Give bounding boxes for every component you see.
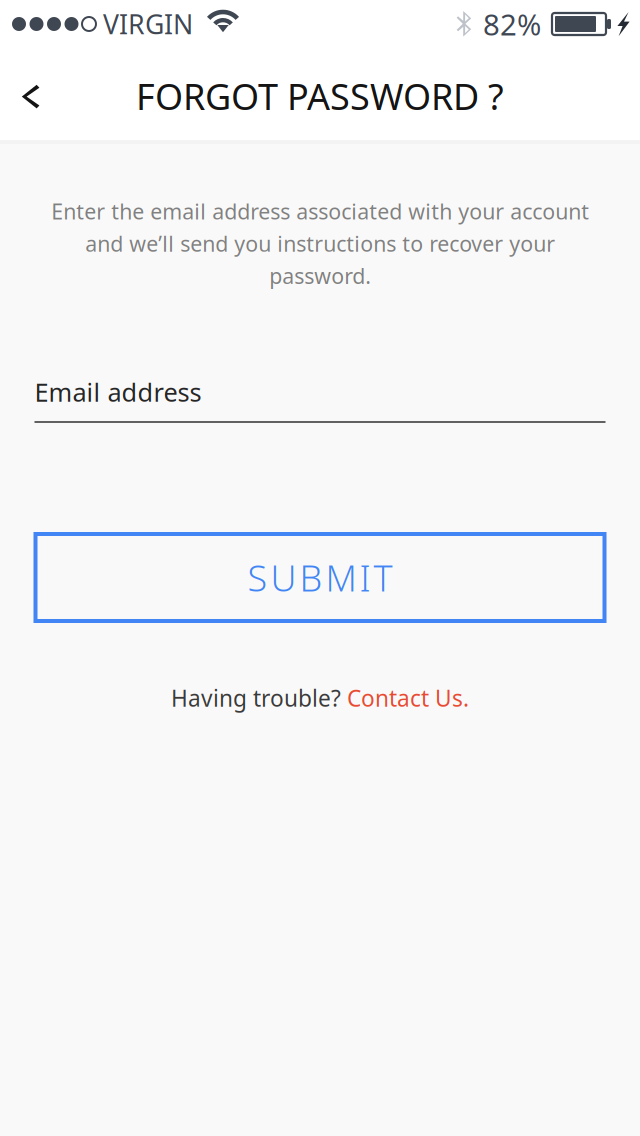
staticText: SUBMIT: [247, 554, 392, 601]
staticText: 82%: [483, 4, 541, 43]
staticText: Contact Us.: [347, 683, 469, 713]
staticText: Having trouble?: [171, 683, 347, 713]
staticText: FORGOT PASSWORD ?: [136, 72, 504, 120]
staticText: Enter the email address associated with …: [51, 197, 589, 290]
button[interactable]: Back: [0, 46, 58, 142]
staticText: Email address: [34, 375, 201, 409]
button[interactable]: SUBMIT: [35, 534, 604, 621]
staticText: VIRGIN: [103, 6, 193, 42]
button[interactable]: Having trouble?: [171, 683, 469, 713]
